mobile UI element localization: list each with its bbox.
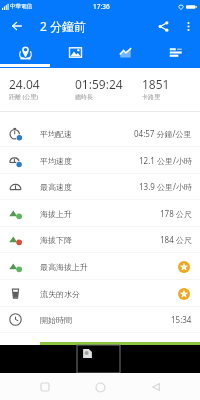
staticText: 平均配速 [40,129,72,139]
staticText: 開始時間 [40,315,72,325]
staticText: 13.9 公里/小時 [139,181,192,192]
button[interactable]: Photos [50,39,100,68]
button[interactable]: Recents [34,376,56,398]
button[interactable]: 平均速度 [0,147,200,174]
button[interactable]: Home [89,376,111,398]
button[interactable]: Back [4,13,30,39]
button[interactable]: Share [150,13,176,39]
staticText: 12.1 公里/小時 [139,155,192,166]
button[interactable]: 流失的水分 [0,280,200,307]
staticText: 最高海拔上升 [40,262,88,272]
staticText: 178 公尺 [160,208,192,219]
staticText: 海拔下降 [40,235,72,245]
staticText: 2 分鐘前 [40,18,86,34]
button[interactable]: Map [0,39,50,68]
staticText: 海拔上升 [40,209,72,219]
staticText: 距離 (公里) [9,93,39,101]
staticText: 1851 [142,76,170,92]
button[interactable]: 平均配速 [0,120,200,147]
button[interactable]: 最高速度 [0,173,200,200]
button[interactable]: 海拔下降 [0,226,200,253]
staticText: 中華電信 [10,3,32,10]
button[interactable]: Details [150,39,200,68]
staticText: 17:36 [93,2,110,11]
staticText: 卡路里 [142,93,160,101]
button[interactable]: Back [145,376,167,398]
button[interactable]: 開始時間 [0,306,200,333]
button[interactable]: More options [176,14,200,38]
staticText: 總時長 [75,93,93,101]
button[interactable]: 海拔上升 [0,200,200,227]
button[interactable]: 最高海拔上升 [0,253,200,280]
staticText: 04:57 分鐘/公里 [134,128,192,139]
staticText: 15:34 [171,314,192,325]
staticText: 平均速度 [40,156,72,166]
staticText: 流失的水分 [40,289,80,299]
staticText: 最高速度 [40,182,72,192]
button[interactable]: Chart [100,39,150,68]
staticText: 24.04 [9,76,40,92]
staticText: 184 公尺 [160,234,192,245]
staticText: 01:59:24 [75,76,123,92]
